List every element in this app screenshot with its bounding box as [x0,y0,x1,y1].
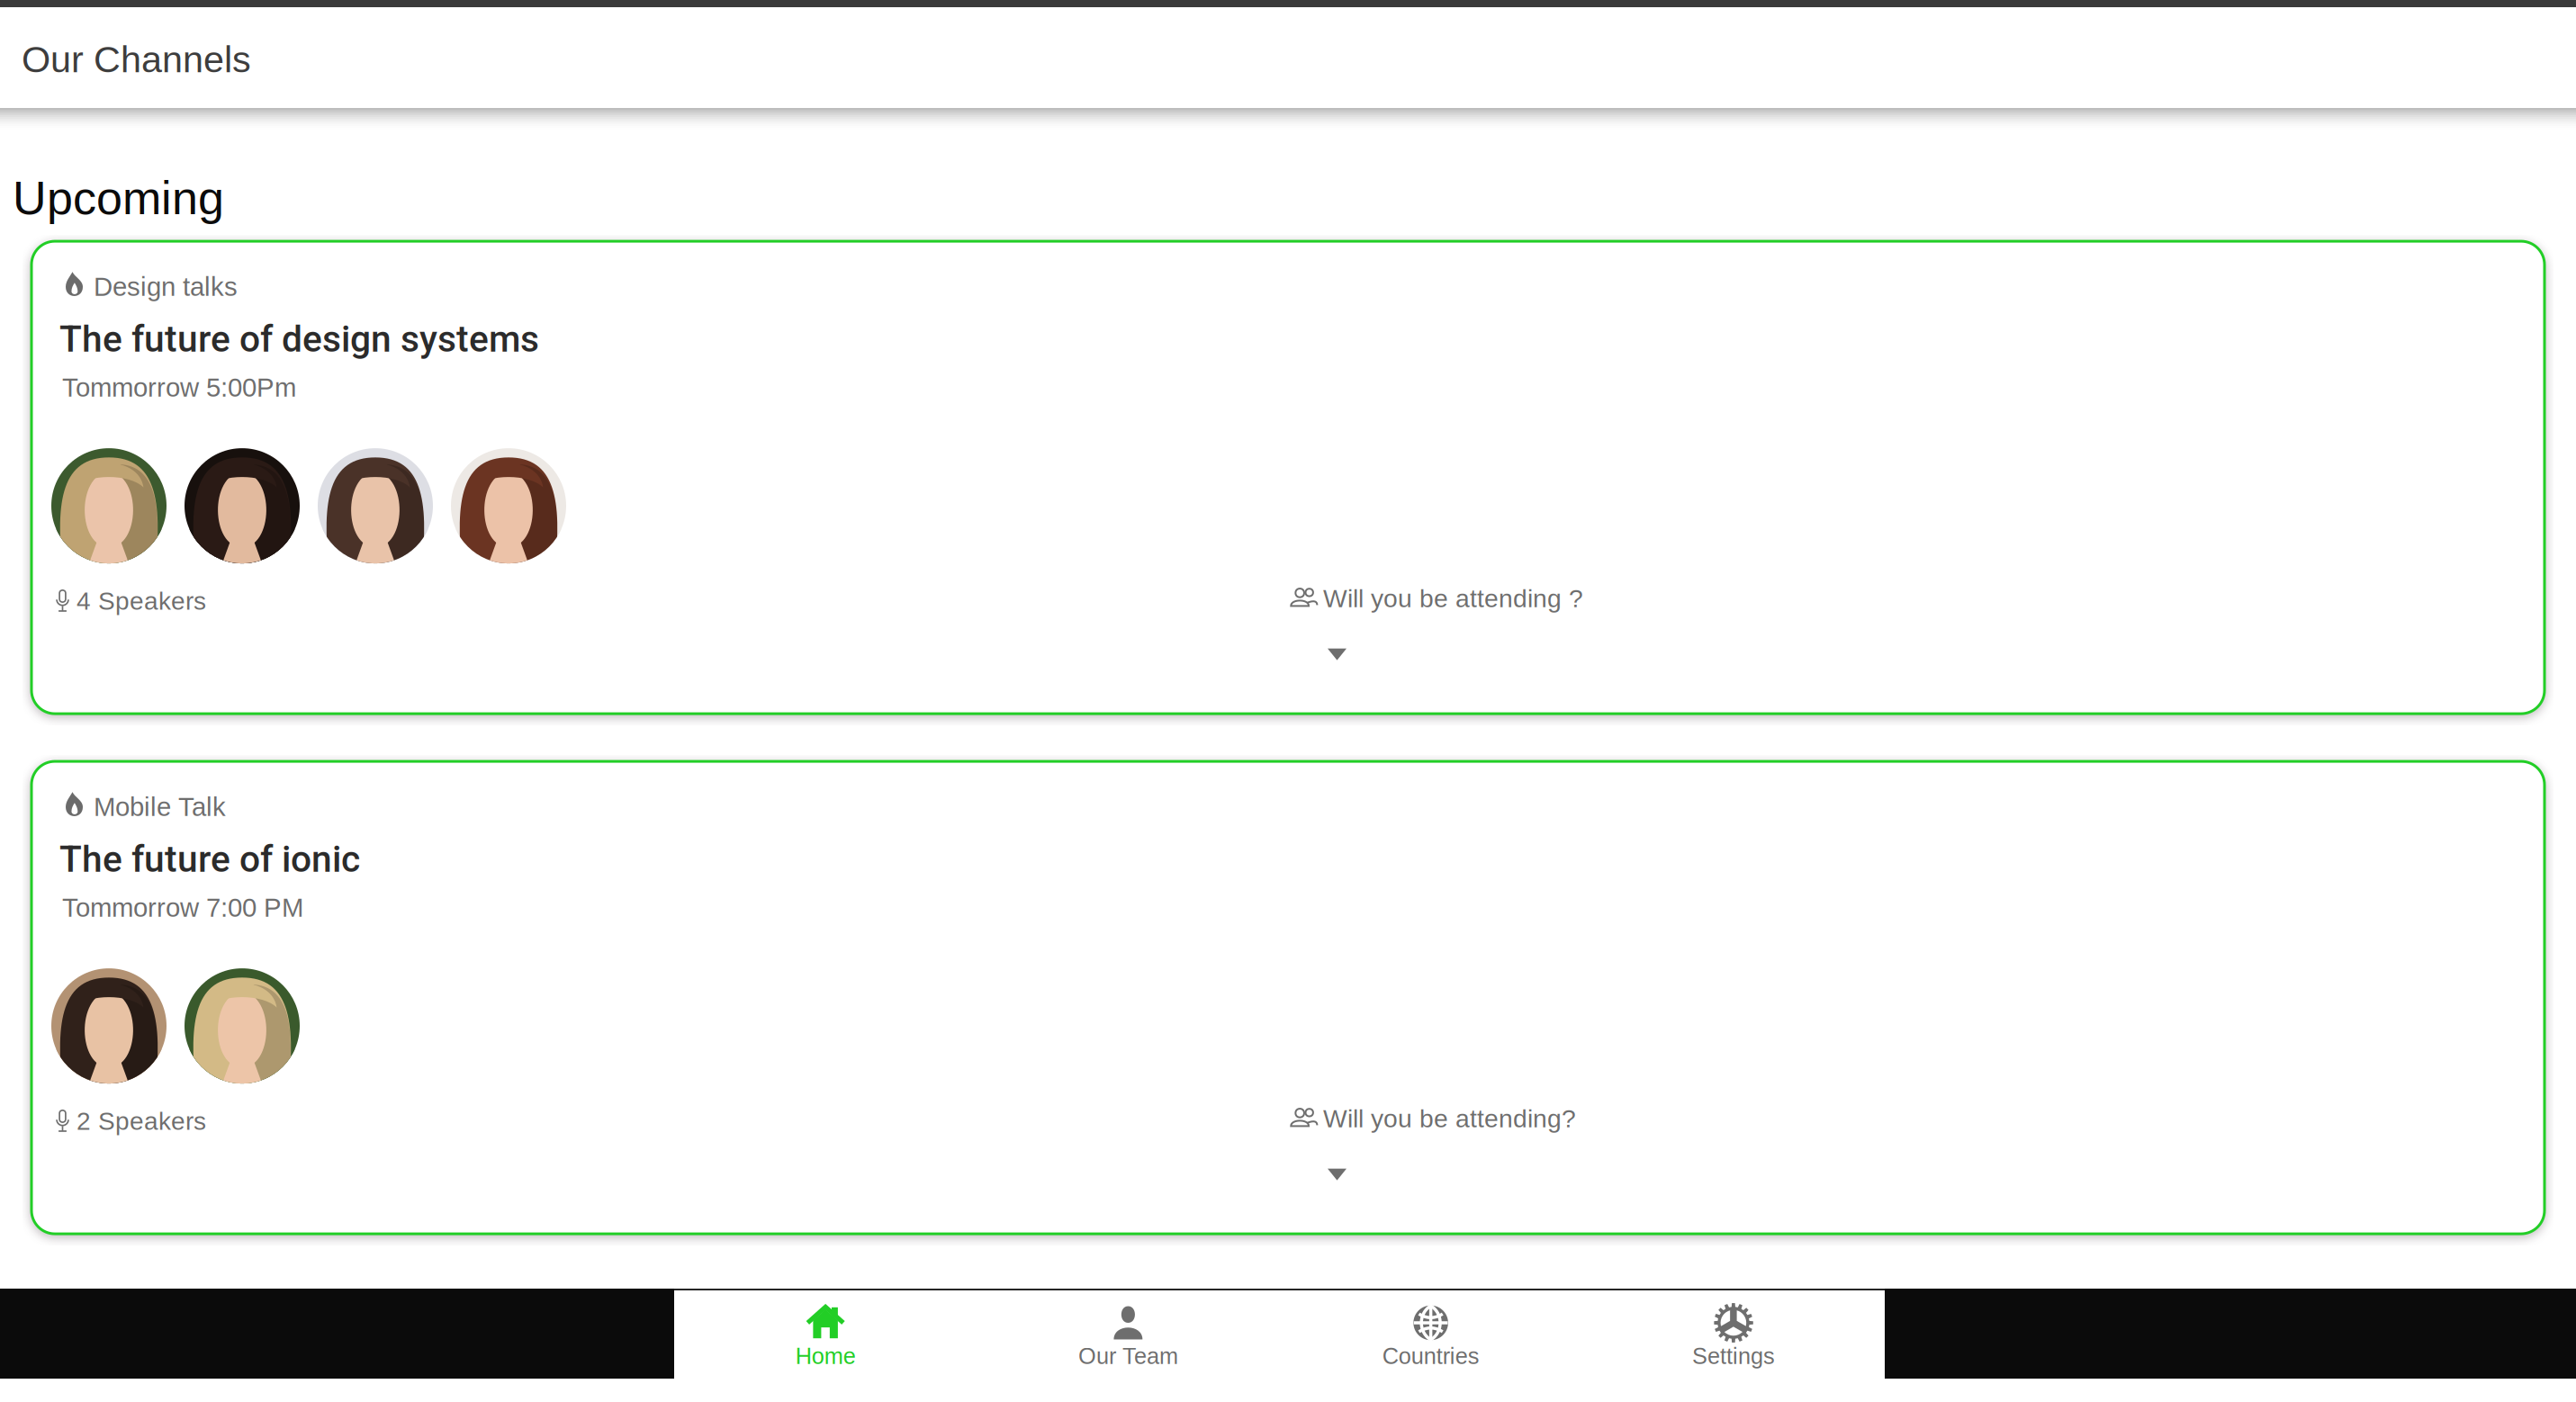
staticText: Our Team [1078,1343,1178,1369]
staticText: The future of ionic [59,838,360,881]
staticText: Will you be attending ? [1323,584,1583,613]
staticText: Mobile Talk [94,792,226,821]
button[interactable]: Our Team [977,1289,1279,1379]
staticText: Tommorrow 5:00Pm [62,373,296,402]
button[interactable]: Mobile Talk [32,761,2544,1234]
button[interactable]: Countries [1279,1289,1582,1379]
staticText: Tommorrow 7:00 PM [62,893,303,922]
staticText: 2 Speakers [77,1107,206,1135]
staticText: Settings [1692,1343,1775,1369]
staticText: Our Channels [22,39,251,80]
staticText: The future of design systems [59,318,539,361]
button[interactable]: Settings [1582,1289,1885,1379]
staticText: Design talks [94,272,238,301]
staticText: Upcoming [13,172,224,224]
staticText: Countries [1382,1343,1479,1369]
staticText: 4 Speakers [77,587,206,615]
staticText: Home [795,1343,856,1369]
staticText: Will you be attending? [1323,1104,1576,1133]
button[interactable]: Will you be attending ? [1285,584,1583,660]
button[interactable]: Design talks [32,241,2544,714]
button[interactable]: Will you be attending? [1285,1104,1576,1180]
button[interactable]: Home [674,1289,977,1379]
